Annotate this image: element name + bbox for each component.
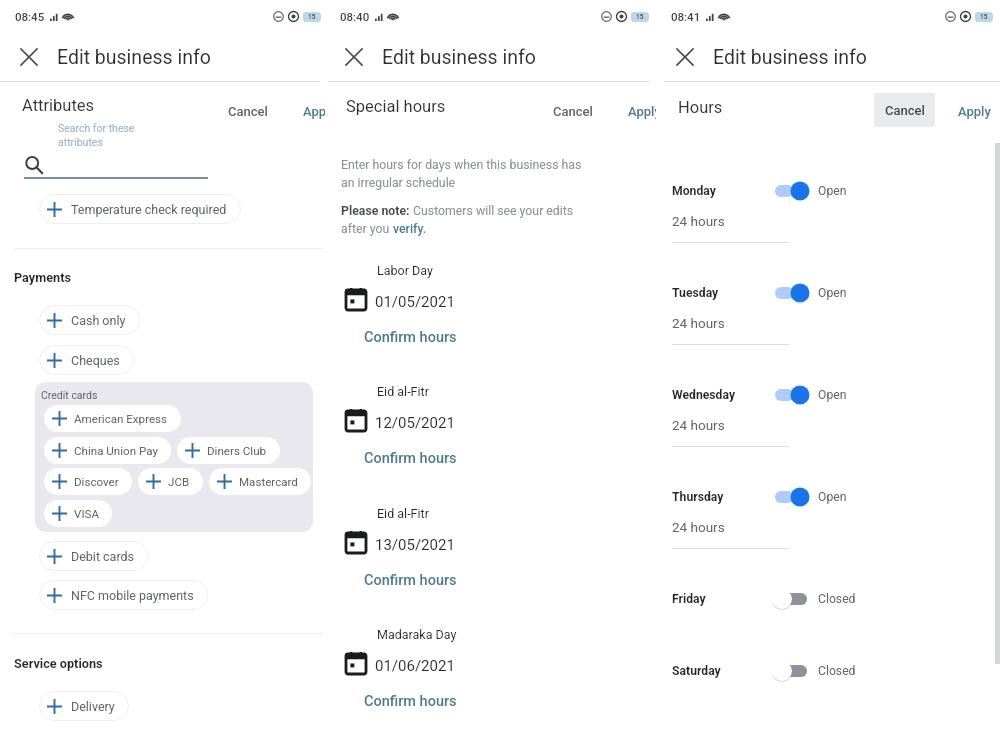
- button[interactable]: JCB: [138, 468, 203, 495]
- button[interactable]: Cash only: [39, 305, 140, 335]
- staticText: Please note:: [341, 204, 410, 218]
- button[interactable]: Close: [13, 41, 45, 73]
- staticText: Cash only: [71, 313, 126, 328]
- staticText: China Union Pay: [74, 444, 158, 458]
- staticText: Cheques: [71, 353, 120, 368]
- staticText: Tuesday: [672, 286, 719, 300]
- button[interactable]: Debit cards: [39, 541, 149, 571]
- button[interactable]: Saturday: [672, 659, 882, 683]
- staticText: 12/05/2021: [375, 414, 455, 432]
- staticText: Madaraka Day: [377, 627, 457, 642]
- staticText: Discover: [74, 475, 119, 489]
- staticText: 24 hours: [672, 417, 725, 433]
- button[interactable]: Confirm hours: [360, 448, 461, 469]
- button[interactable]: Delivery: [39, 691, 129, 721]
- staticText: Closed: [818, 592, 856, 606]
- button[interactable]: Close: [669, 41, 701, 73]
- staticText: Hours: [678, 98, 723, 117]
- button[interactable]: Confirm hours: [360, 570, 461, 591]
- button[interactable]: Temperature check required: [39, 194, 241, 224]
- staticText: 08:45: [15, 10, 45, 23]
- staticText: Open: [818, 490, 847, 504]
- staticText: Payments: [14, 270, 71, 285]
- staticText: Diners Club: [207, 444, 267, 458]
- button[interactable]: Mastercard: [209, 468, 311, 495]
- button[interactable]: Confirm hours: [360, 691, 461, 712]
- staticText: 24 hours: [672, 519, 725, 535]
- button[interactable]: Monday: [672, 179, 882, 203]
- staticText: American Express: [74, 412, 168, 426]
- staticText: Labor Day: [377, 263, 433, 278]
- button[interactable]: China Union Pay: [44, 437, 171, 464]
- staticText: Mastercard: [239, 475, 298, 489]
- staticText: Thursday: [672, 490, 724, 504]
- button[interactable]: VISA: [44, 500, 112, 527]
- button[interactable]: Wednesday: [672, 383, 882, 407]
- staticText: Confirm hours: [364, 450, 457, 467]
- staticText: Apply: [958, 104, 991, 119]
- staticText: Search for these: [58, 122, 135, 134]
- button[interactable]: Open: [775, 487, 811, 507]
- button[interactable]: Diners Club: [177, 437, 280, 464]
- button[interactable]: 24 hours: [672, 311, 789, 345]
- staticText: Attributes: [22, 96, 95, 115]
- staticText: Friday: [672, 592, 706, 606]
- staticText: Cancel: [885, 103, 925, 118]
- staticText: Apply: [303, 104, 328, 119]
- button[interactable]: Closed: [775, 661, 811, 681]
- staticText: Cancel: [228, 104, 268, 119]
- staticText: Confirm hours: [364, 329, 457, 346]
- staticText: NFC mobile payments: [71, 588, 194, 603]
- button[interactable]: 24 hours: [672, 209, 789, 243]
- button[interactable]: Closed: [775, 589, 811, 609]
- button[interactable]: American Express: [44, 405, 181, 432]
- staticText: Open: [818, 388, 847, 402]
- button[interactable]: Friday: [672, 587, 882, 611]
- button[interactable]: 24 hours: [672, 413, 789, 447]
- staticText: Confirm hours: [364, 572, 457, 589]
- button[interactable]: Cancel: [547, 100, 599, 123]
- button[interactable]: Open: [775, 181, 811, 201]
- staticText: after you: [341, 222, 393, 236]
- staticText: an irregular schedule: [341, 176, 456, 190]
- staticText: VISA: [74, 507, 99, 521]
- staticText: Open: [818, 184, 847, 198]
- button[interactable]: Open: [775, 385, 811, 405]
- button[interactable]: Apply: [955, 100, 994, 123]
- button[interactable]: Tuesday: [672, 281, 882, 305]
- button[interactable]: Thursday: [672, 485, 882, 509]
- button[interactable]: NFC mobile payments: [39, 580, 208, 610]
- staticText: Edit business info: [57, 46, 211, 69]
- staticText: Wednesday: [672, 388, 736, 402]
- staticText: Service options: [14, 656, 103, 671]
- staticText: Open: [818, 286, 847, 300]
- staticText: Debit cards: [71, 549, 135, 564]
- button[interactable]: Apply: [301, 100, 328, 123]
- button[interactable]: 24 hours: [672, 515, 789, 549]
- staticText: Eid al-Fitr: [377, 506, 429, 521]
- staticText: Edit business info: [713, 46, 867, 69]
- button[interactable]: Cancel: [222, 100, 274, 123]
- button[interactable]: Apply: [626, 100, 656, 123]
- button[interactable]: Close: [338, 41, 370, 73]
- staticText: Edit business info: [382, 46, 536, 69]
- staticText: 15: [980, 13, 988, 21]
- staticText: Monday: [672, 184, 716, 198]
- staticText: Cancel: [553, 104, 593, 119]
- staticText: Credit cards: [41, 389, 98, 401]
- staticText: 15: [636, 13, 644, 21]
- button[interactable]: Discover: [44, 468, 132, 495]
- staticText: Closed: [818, 664, 856, 678]
- button[interactable]: Open: [775, 283, 811, 303]
- staticText: Confirm hours: [364, 693, 457, 710]
- button[interactable]: Confirm hours: [360, 327, 461, 348]
- staticText: Enter hours for days when this business …: [341, 158, 582, 172]
- staticText: 15: [308, 13, 316, 21]
- button[interactable]: Cheques: [39, 345, 134, 375]
- button[interactable]: Cancel: [874, 93, 935, 127]
- staticText: 24 hours: [672, 213, 725, 229]
